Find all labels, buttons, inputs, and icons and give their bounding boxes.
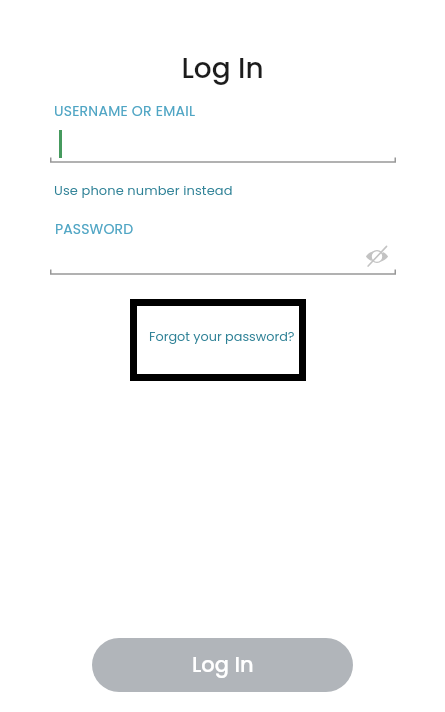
staticText: Log In xyxy=(192,650,254,679)
button[interactable]: Use phone number instead xyxy=(50,174,240,204)
button[interactable]: Forgot your password? xyxy=(137,306,299,374)
button[interactable]: Log In xyxy=(92,638,353,692)
staticText: PASSWORD xyxy=(55,219,134,239)
staticText: Forgot your password? xyxy=(149,328,295,346)
staticText: USERNAME OR EMAIL xyxy=(54,101,196,121)
staticText: Use phone number instead xyxy=(54,181,233,199)
button[interactable]: Show password xyxy=(364,243,389,268)
button[interactable]: Password field xyxy=(50,216,396,274)
button[interactable]: Username or email field xyxy=(50,98,396,162)
staticText: Log In xyxy=(0,49,445,88)
